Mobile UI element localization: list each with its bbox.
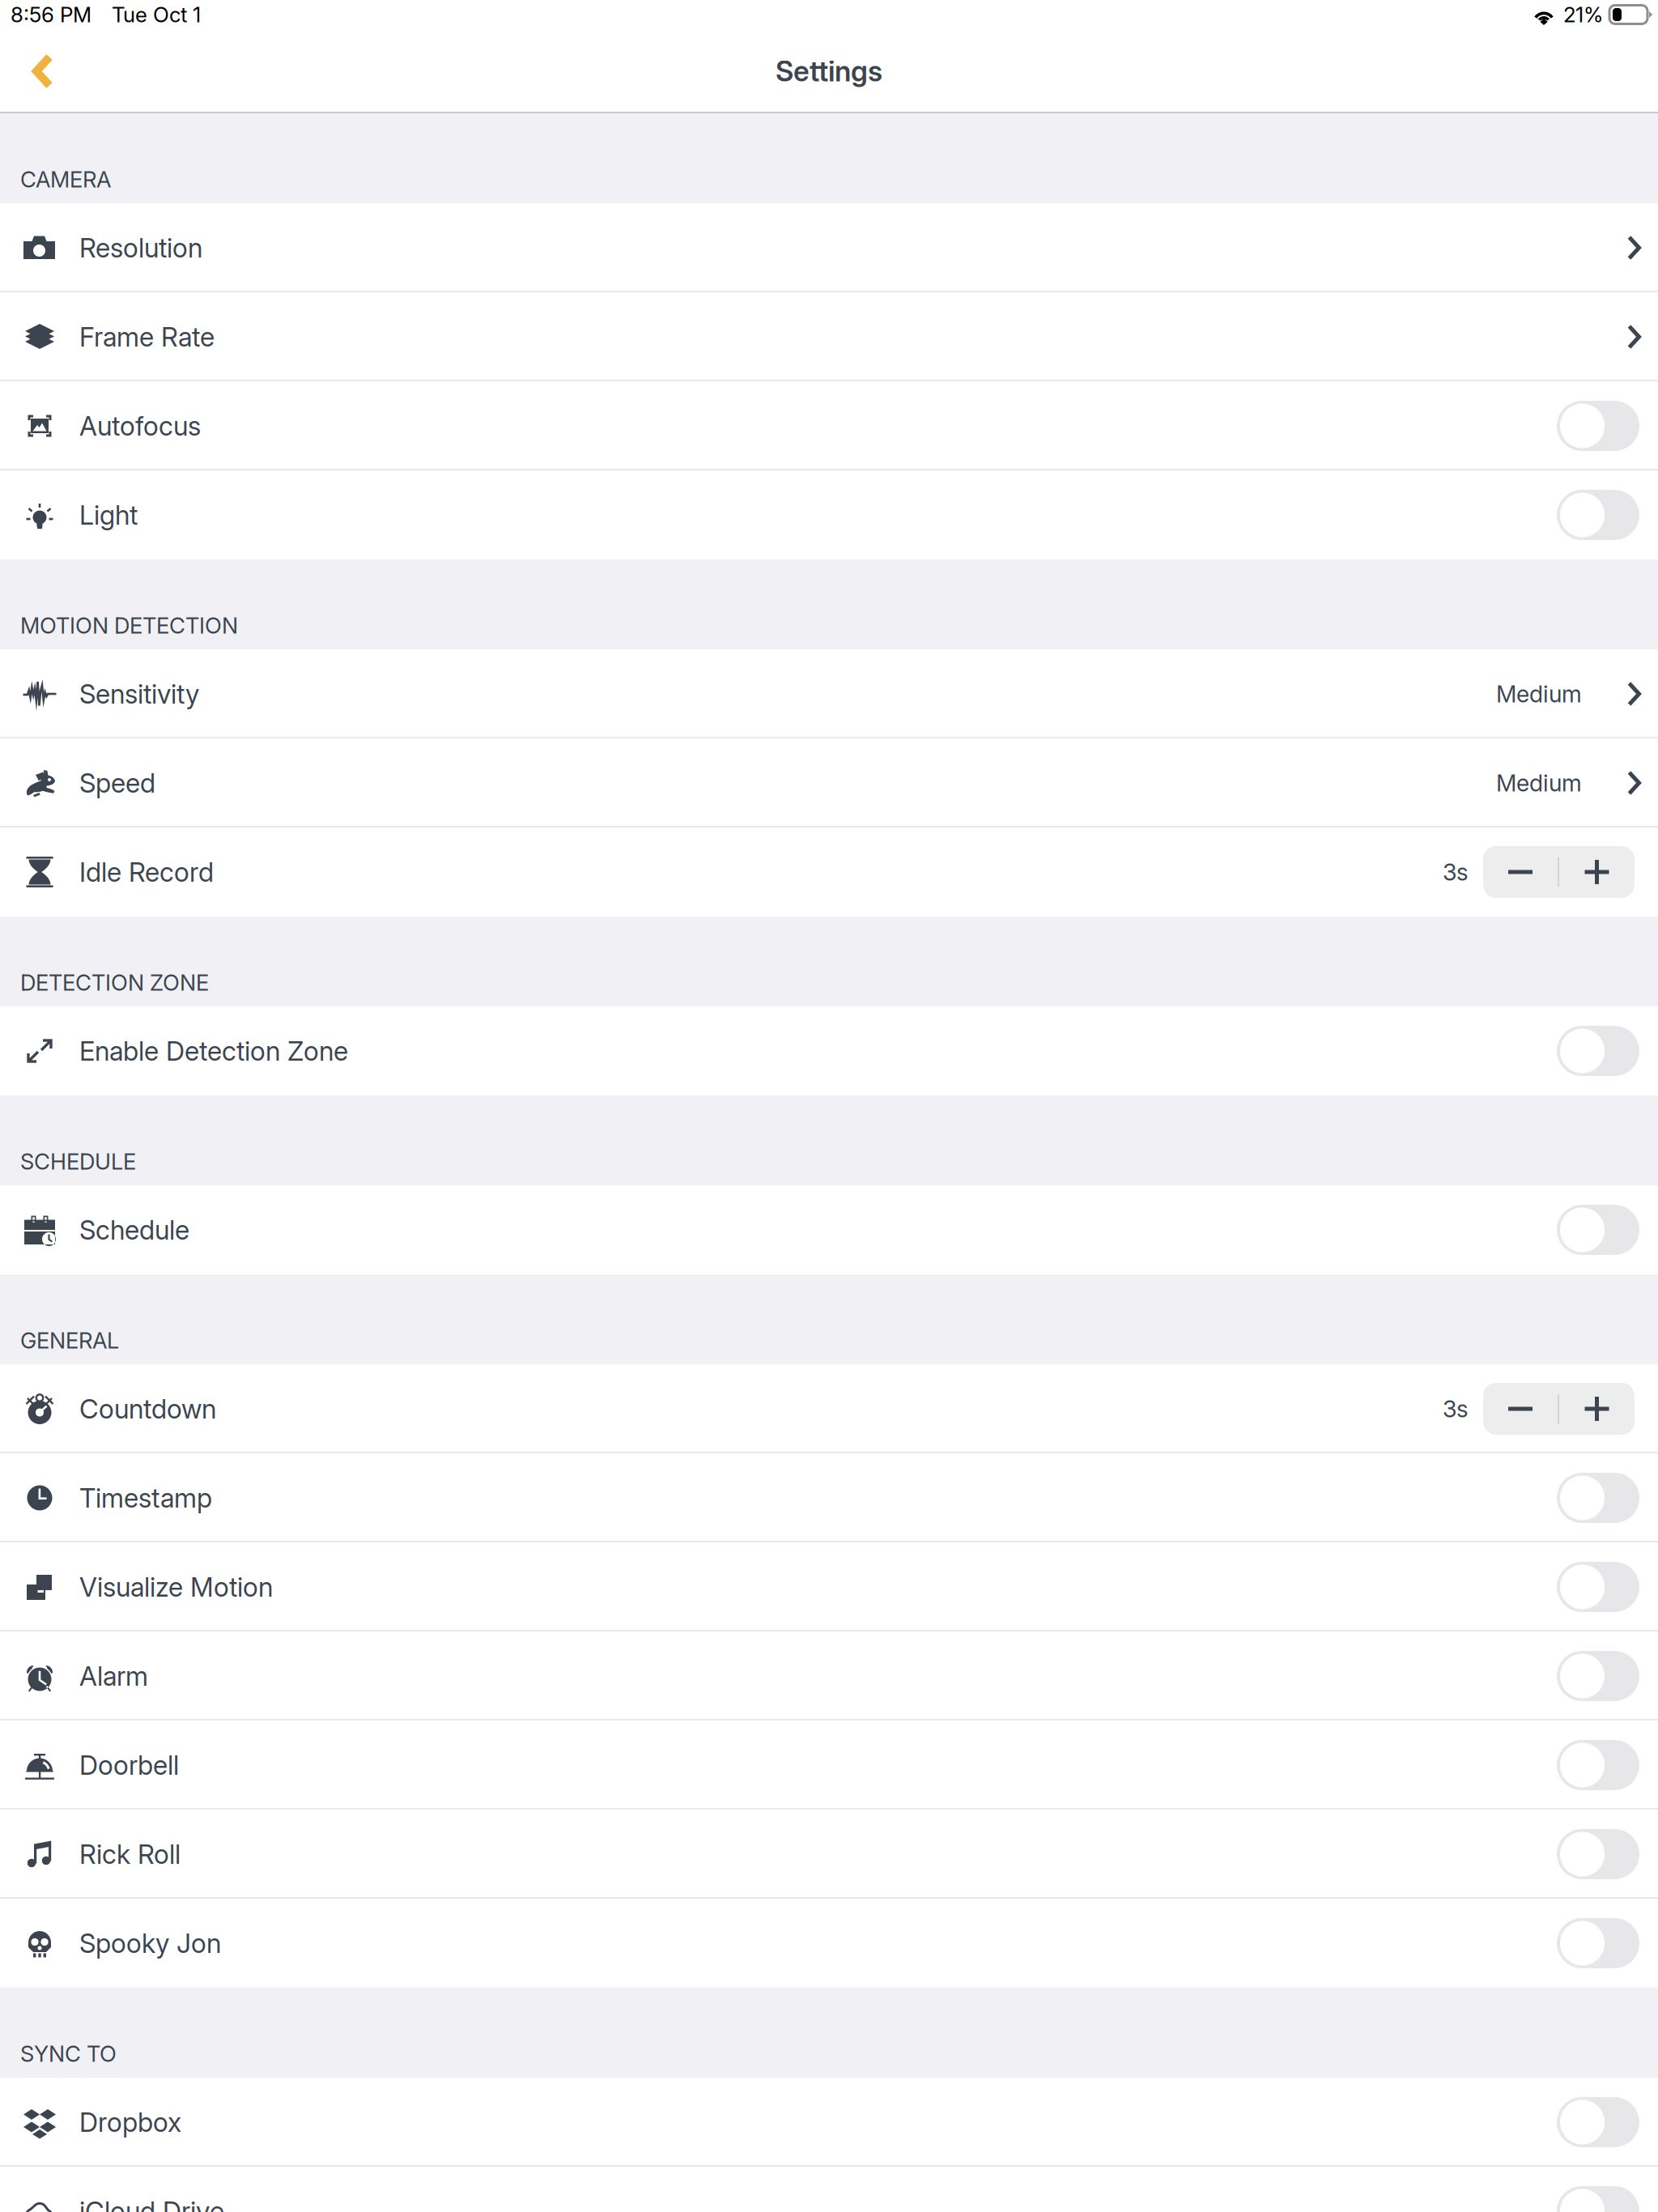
- button[interactable]: Enable Detection Zone: [0, 1006, 1658, 1095]
- button[interactable]: Timestamp: [0, 1453, 1658, 1542]
- staticText: Rick Roll: [79, 1838, 181, 1870]
- button[interactable]: Decrease: [1483, 1383, 1558, 1435]
- staticText: 8:56 PM: [11, 2, 91, 27]
- staticText: Light: [79, 499, 138, 531]
- button[interactable]: Back: [4, 32, 82, 110]
- staticText: iCloud Drive: [79, 2195, 224, 2212]
- staticText: Resolution: [79, 232, 202, 264]
- staticText: Autofocus: [79, 410, 201, 442]
- staticText: Medium: [1496, 769, 1582, 797]
- staticText: Tue Oct 1: [112, 2, 201, 27]
- button[interactable]: Schedule: [0, 1185, 1658, 1274]
- staticText: Speed: [79, 767, 155, 799]
- button[interactable]: Countdown: [0, 1364, 1658, 1453]
- staticText: Sensitivity: [79, 678, 199, 710]
- button[interactable]: Autofocus: [0, 381, 1658, 470]
- staticText: SCHEDULE: [20, 1148, 136, 1175]
- staticText: Idle Record: [79, 856, 214, 888]
- button[interactable]: Frame Rate: [0, 292, 1658, 381]
- staticText: MOTION DETECTION: [20, 612, 238, 639]
- button[interactable]: Resolution: [0, 203, 1658, 292]
- button[interactable]: Speed: [0, 738, 1658, 827]
- button[interactable]: Light: [0, 470, 1658, 559]
- staticText: 3s: [1443, 858, 1469, 886]
- button[interactable]: Decrease: [1483, 846, 1558, 898]
- button[interactable]: Sensitivity: [0, 649, 1658, 738]
- button[interactable]: Increase: [1559, 846, 1635, 898]
- staticText: Frame Rate: [79, 321, 215, 353]
- staticText: Doorbell: [79, 1749, 179, 1781]
- staticText: SYNC TO: [20, 2040, 117, 2067]
- staticText: Spooky Jon: [79, 1927, 221, 1959]
- staticText: Countdown: [79, 1393, 216, 1425]
- staticText: GENERAL: [20, 1327, 119, 1354]
- staticText: 21%: [1563, 2, 1603, 27]
- staticText: Schedule: [79, 1214, 189, 1246]
- button[interactable]: Rick Roll: [0, 1810, 1658, 1899]
- staticText: 3s: [1443, 1395, 1469, 1423]
- button[interactable]: Alarm: [0, 1631, 1658, 1721]
- button[interactable]: Idle Record: [0, 827, 1658, 917]
- button[interactable]: Doorbell: [0, 1721, 1658, 1810]
- button[interactable]: iCloud Drive: [0, 2167, 1658, 2212]
- staticText: Dropbox: [79, 2106, 181, 2138]
- staticText: DETECTION ZONE: [20, 969, 209, 996]
- button[interactable]: Dropbox: [0, 2078, 1658, 2167]
- staticText: Alarm: [79, 1660, 148, 1692]
- staticText: Enable Detection Zone: [79, 1035, 348, 1067]
- button[interactable]: Visualize Motion: [0, 1542, 1658, 1631]
- staticText: Medium: [1496, 680, 1582, 708]
- button[interactable]: Increase: [1559, 1383, 1635, 1435]
- staticText: CAMERA: [20, 166, 111, 193]
- button[interactable]: Spooky Jon: [0, 1899, 1658, 1988]
- staticText: Timestamp: [79, 1482, 212, 1514]
- staticText: Settings: [776, 54, 882, 88]
- staticText: Visualize Motion: [79, 1571, 273, 1603]
